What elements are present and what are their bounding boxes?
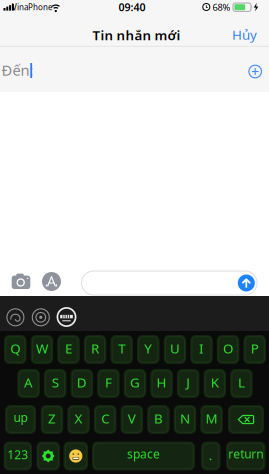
staticText: D bbox=[77, 373, 87, 391]
button[interactable]: Delete bbox=[228, 405, 264, 434]
button[interactable]: Send bbox=[238, 274, 255, 291]
staticText: Đến: bbox=[1, 60, 33, 80]
button[interactable]: space bbox=[92, 441, 195, 470]
button[interactable]: V bbox=[120, 405, 143, 434]
staticText: L bbox=[238, 373, 245, 391]
staticText: T bbox=[118, 339, 125, 357]
button[interactable]: U bbox=[164, 335, 186, 364]
staticText: W bbox=[36, 339, 48, 357]
button[interactable]: E bbox=[57, 335, 80, 364]
button[interactable]: Camera bbox=[12, 273, 30, 289]
button[interactable]: Hủy bbox=[232, 26, 257, 43]
staticText: Y bbox=[144, 339, 152, 357]
button[interactable]: Keyboard settings bbox=[32, 309, 49, 326]
staticText: O bbox=[223, 339, 233, 357]
button[interactable]: F bbox=[97, 369, 120, 398]
button[interactable]: . bbox=[201, 441, 221, 470]
button[interactable]: K bbox=[203, 369, 226, 398]
button[interactable]: up bbox=[5, 405, 36, 434]
staticText: P bbox=[251, 339, 259, 357]
button[interactable]: Y bbox=[137, 335, 160, 364]
button[interactable]: 123 bbox=[4, 441, 32, 470]
button[interactable]: return bbox=[226, 441, 266, 470]
staticText: X bbox=[75, 409, 83, 427]
staticText: A bbox=[24, 373, 33, 391]
staticText: F bbox=[105, 373, 112, 391]
staticText: up bbox=[13, 409, 27, 425]
staticText: Q bbox=[10, 339, 20, 357]
staticText: U bbox=[170, 339, 180, 357]
staticText: . bbox=[209, 446, 213, 464]
button[interactable]: M bbox=[200, 405, 223, 434]
button[interactable]: Keyboard theme bbox=[7, 309, 24, 326]
staticText: N bbox=[180, 409, 190, 427]
button[interactable]: B bbox=[147, 405, 170, 434]
button[interactable]: O bbox=[217, 335, 239, 364]
staticText: H bbox=[157, 373, 167, 391]
staticText: space bbox=[127, 446, 160, 462]
staticText: VinaPhone bbox=[12, 2, 53, 12]
staticText: S bbox=[52, 373, 59, 391]
button[interactable]: Keyboard store bbox=[56, 307, 77, 327]
button[interactable]: X bbox=[67, 405, 90, 434]
staticText: J bbox=[186, 373, 190, 391]
button[interactable]: Keyboard settings bbox=[36, 441, 60, 470]
button[interactable]: C bbox=[94, 405, 116, 434]
button[interactable]: Emoji bbox=[63, 441, 88, 470]
staticText: 09:40 bbox=[118, 0, 145, 14]
staticText: I bbox=[199, 339, 204, 357]
staticText: K bbox=[211, 373, 219, 391]
staticText: R bbox=[91, 339, 99, 357]
button[interactable]: J bbox=[177, 369, 199, 398]
button[interactable]: Add contact bbox=[249, 65, 261, 78]
button[interactable]: A bbox=[17, 369, 40, 398]
button[interactable]: P bbox=[243, 335, 266, 364]
staticText: Hủy bbox=[232, 26, 257, 43]
button[interactable]: R bbox=[84, 335, 106, 364]
button[interactable]: S bbox=[44, 369, 66, 398]
staticText: G bbox=[130, 373, 140, 391]
button[interactable]: Z bbox=[41, 405, 63, 434]
staticText: 68% bbox=[212, 1, 230, 13]
staticText: Tin nhắn mới bbox=[92, 26, 180, 44]
button[interactable]: H bbox=[150, 369, 173, 398]
button[interactable]: G bbox=[124, 369, 146, 398]
button[interactable]: I bbox=[190, 335, 213, 364]
staticText: V bbox=[128, 409, 136, 427]
button[interactable]: D bbox=[70, 369, 93, 398]
button[interactable]: iMessage apps bbox=[42, 272, 61, 291]
staticText: B bbox=[154, 409, 163, 427]
staticText: M bbox=[206, 409, 218, 427]
staticText: Z bbox=[48, 409, 56, 427]
staticText: C bbox=[101, 409, 109, 427]
staticText: E bbox=[65, 339, 72, 357]
staticText: 123 bbox=[7, 446, 28, 462]
button[interactable]: N bbox=[174, 405, 196, 434]
button[interactable]: L bbox=[230, 369, 253, 398]
staticText: return bbox=[228, 446, 263, 462]
button[interactable]: Q bbox=[4, 335, 27, 364]
button[interactable]: T bbox=[110, 335, 133, 364]
button[interactable]: W bbox=[31, 335, 53, 364]
